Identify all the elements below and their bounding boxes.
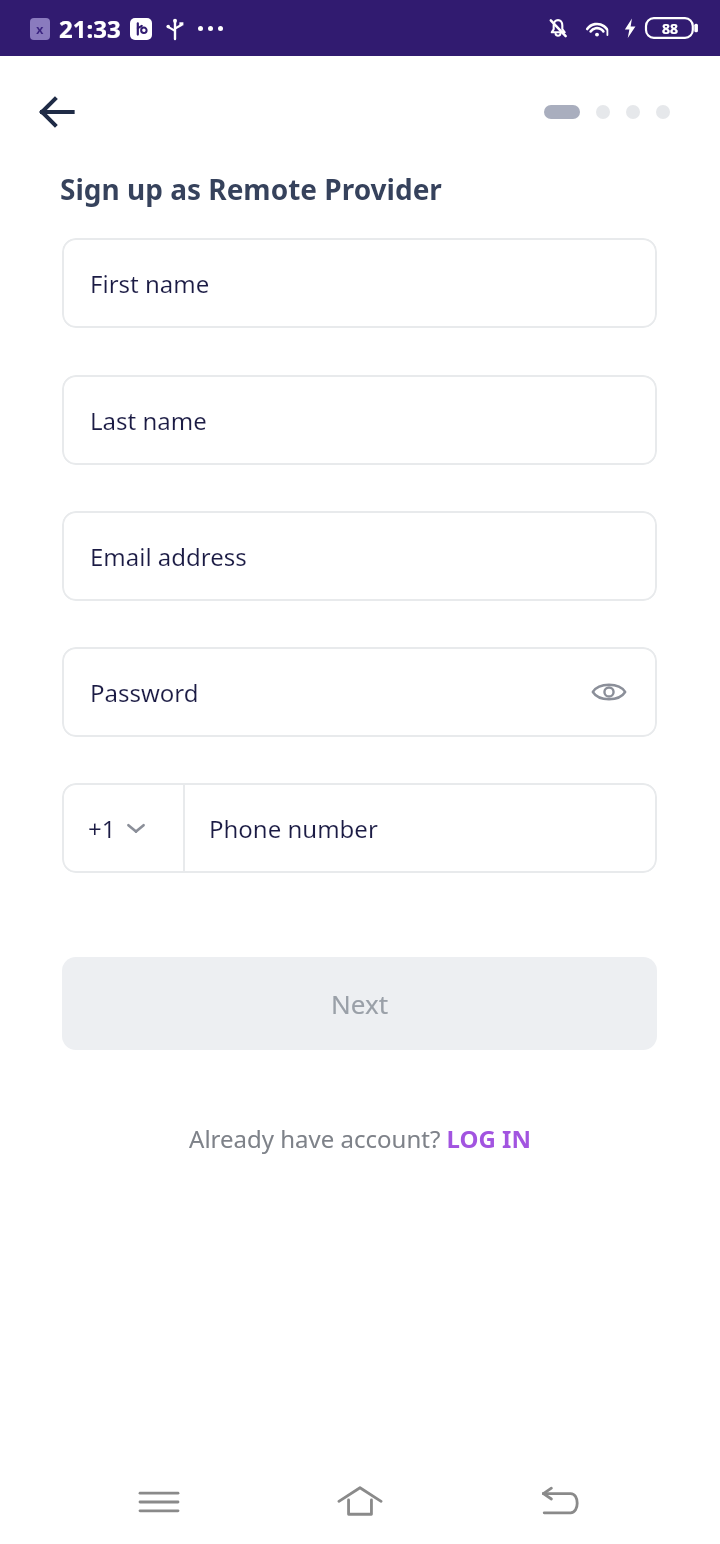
staticText: Password xyxy=(90,676,199,709)
button[interactable]: Recents xyxy=(117,1460,201,1544)
staticText: Email address xyxy=(90,540,247,573)
button[interactable]: Already have account? LOG IN xyxy=(181,1118,539,1159)
button[interactable]: Next xyxy=(62,957,657,1050)
staticText: Last name xyxy=(90,404,207,437)
button[interactable]: First name xyxy=(62,238,657,328)
button[interactable]: Back xyxy=(29,84,85,140)
staticText: First name xyxy=(90,267,210,300)
button[interactable]: +1 xyxy=(62,783,183,873)
button[interactable]: Phone number xyxy=(185,783,657,873)
button[interactable]: Home xyxy=(318,1460,402,1544)
staticText: Sign up as Remote Provider xyxy=(60,170,442,208)
button[interactable]: Last name xyxy=(62,375,657,465)
staticText: x xyxy=(36,20,44,38)
button[interactable]: Show password xyxy=(585,668,633,716)
button[interactable]: Back xyxy=(519,1460,603,1544)
staticText: Already have account? LOG IN xyxy=(189,1122,531,1155)
button[interactable]: Email address xyxy=(62,511,657,601)
button[interactable]: Password xyxy=(62,647,657,737)
staticText: 88 xyxy=(662,19,679,38)
staticText: Next xyxy=(331,986,389,1021)
staticText: 21:33 xyxy=(59,12,121,45)
staticText: +1 xyxy=(88,812,116,845)
staticText: Phone number xyxy=(209,812,378,845)
